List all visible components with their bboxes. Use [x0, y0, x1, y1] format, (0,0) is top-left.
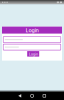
- staticText: Login: [29, 51, 38, 56]
- button[interactable]: Login: [27, 51, 39, 57]
- button[interactable]: Home: [30, 94, 34, 97]
- button[interactable]: Recents: [43, 94, 46, 97]
- button[interactable]: Back: [18, 94, 21, 98]
- staticText: Login: [25, 27, 38, 34]
